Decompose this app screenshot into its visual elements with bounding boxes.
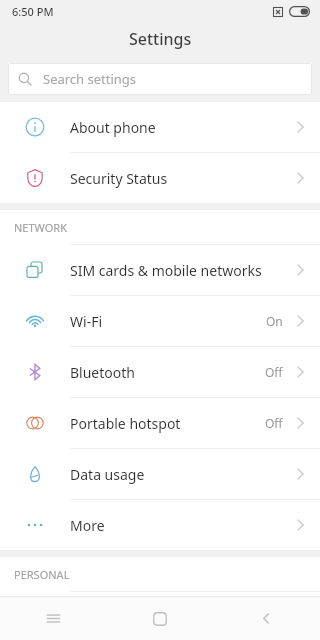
staticText: On: [266, 313, 283, 329]
staticText: About phone: [70, 118, 292, 137]
staticText: Wi-Fi: [70, 312, 266, 331]
staticText: NETWORK: [14, 220, 67, 235]
staticText: SIM cards & mobile networks: [70, 261, 292, 280]
button[interactable]: Wi-Fi: [0, 296, 320, 346]
staticText: PERSONAL: [14, 567, 70, 582]
staticText: Off: [265, 415, 283, 431]
staticText: Off: [265, 364, 283, 380]
staticText: Bluetooth: [70, 363, 265, 382]
staticText: Search settings: [43, 70, 137, 88]
button[interactable]: Security Status: [0, 153, 320, 203]
button[interactable]: Search settings: [8, 63, 312, 95]
button[interactable]: Home: [106, 597, 213, 640]
staticText: Settings: [129, 28, 192, 50]
staticText: Security Status: [70, 169, 292, 188]
staticText: Data usage: [70, 465, 292, 484]
button[interactable]: More: [0, 500, 320, 550]
button[interactable]: Bluetooth: [0, 347, 320, 397]
staticText: 6:50 PM: [12, 4, 54, 19]
button[interactable]: Back: [213, 597, 320, 640]
staticText: Portable hotspot: [70, 414, 265, 433]
button[interactable]: SIM cards & mobile networks: [0, 245, 320, 295]
button[interactable]: About phone: [0, 102, 320, 152]
button[interactable]: Menu: [0, 597, 106, 640]
button[interactable]: Data usage: [0, 449, 320, 499]
staticText: More: [70, 516, 292, 535]
button[interactable]: Portable hotspot: [0, 398, 320, 448]
